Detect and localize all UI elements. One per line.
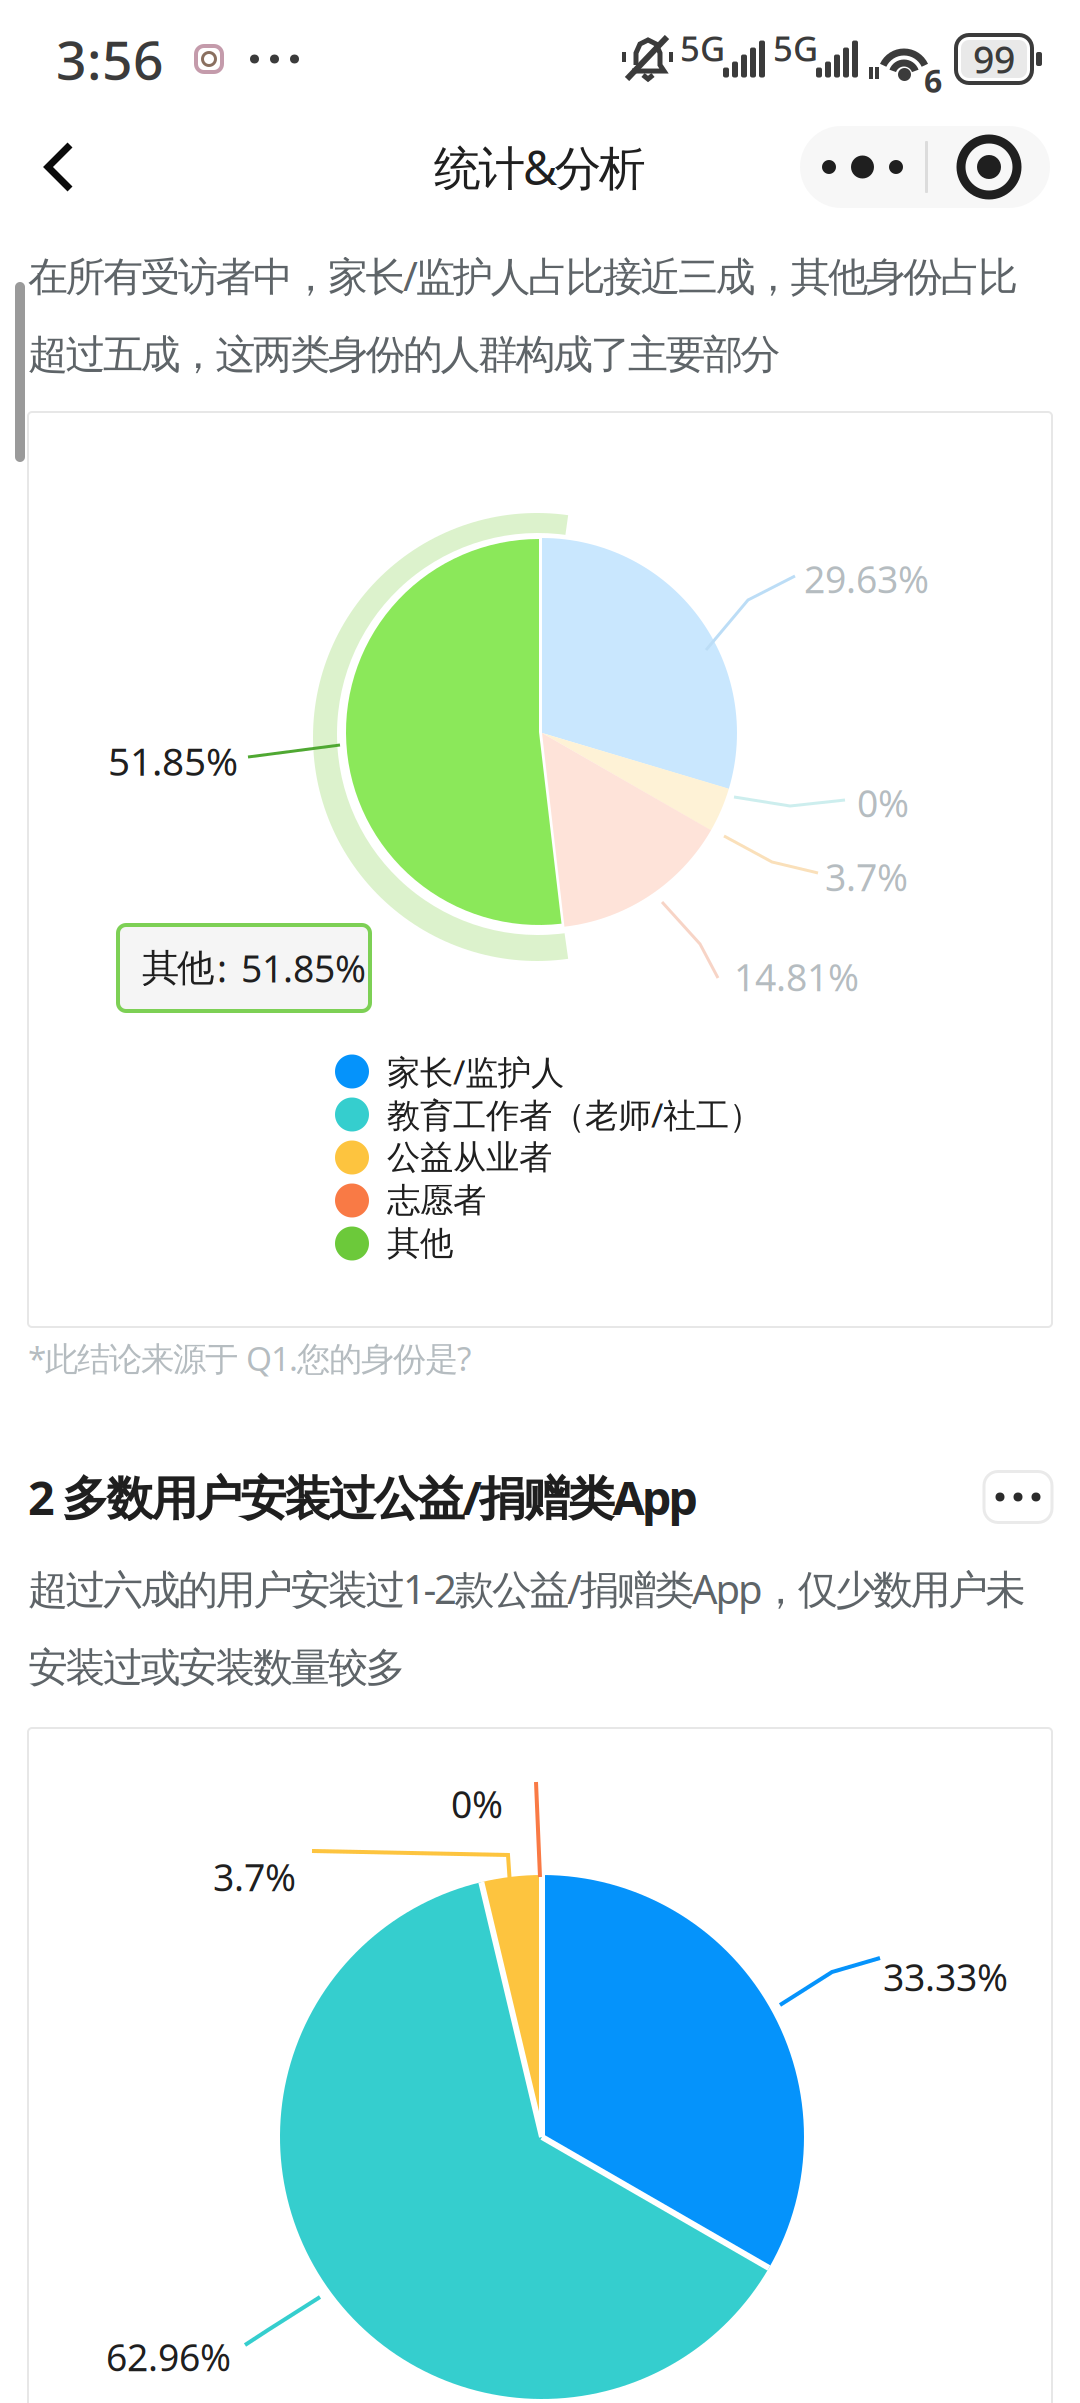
button[interactable]: More options bbox=[984, 1471, 1052, 1522]
staticText: : bbox=[217, 943, 227, 993]
staticText: 14.81% bbox=[734, 952, 859, 1002]
staticText: 3.7% bbox=[213, 1852, 296, 1902]
staticText: 公益从业者 bbox=[387, 1137, 552, 1178]
button[interactable]: Back bbox=[10, 113, 106, 221]
staticText: 51.85% bbox=[108, 735, 238, 786]
staticText: 2 多数用户安装过公益/捐赠类App bbox=[28, 1466, 697, 1528]
staticText: 其他 bbox=[142, 945, 214, 991]
staticText: 51.85% bbox=[241, 943, 366, 993]
staticText: 6 bbox=[924, 59, 942, 101]
staticText: 统计&分析 bbox=[434, 136, 646, 198]
staticText: *此结论来源于 Q1.您的身份是? bbox=[28, 1336, 471, 1380]
staticText: 5G bbox=[773, 25, 818, 71]
staticText: 3:56 bbox=[56, 24, 164, 94]
staticText: 99 bbox=[973, 34, 1015, 84]
staticText: 志愿者 bbox=[387, 1180, 486, 1221]
staticText: 教育工作者（老师/社工） bbox=[387, 1092, 762, 1137]
staticText: 3.7% bbox=[825, 852, 908, 902]
staticText: 62.96% bbox=[106, 2332, 231, 2382]
staticText: 0% bbox=[451, 1779, 503, 1829]
staticText: 家长/监护人 bbox=[387, 1049, 564, 1094]
staticText: 在所有受访者中，家长/监护人占比接近三成，其他身份占比 bbox=[28, 249, 1018, 302]
staticText: 33.33% bbox=[883, 1952, 1008, 2002]
staticText: 其他 bbox=[387, 1223, 453, 1264]
staticText: 0% bbox=[857, 778, 909, 828]
staticText: 29.63% bbox=[804, 554, 929, 604]
staticText: 5G bbox=[680, 25, 725, 71]
staticText: 超过六成的用户安装过1-2款公益/捐赠类App，仅少数用户未 bbox=[28, 1562, 1025, 1615]
staticText: 安装过或安装数量较多 bbox=[28, 1643, 405, 1692]
staticText: 超过五成，这两类身份的人群构成了主要部分 bbox=[28, 330, 780, 379]
button[interactable]: Menu bbox=[800, 126, 1050, 208]
